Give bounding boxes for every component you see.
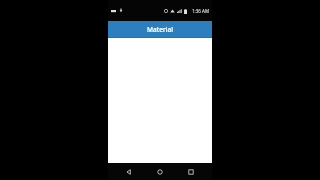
staticText: 1:36 AM [192,8,210,14]
button[interactable]: Material [108,21,212,38]
staticText: Material [147,25,173,34]
button[interactable]: Home [150,163,170,180]
button[interactable]: Back [119,163,139,180]
button[interactable]: Recent apps [181,163,201,180]
